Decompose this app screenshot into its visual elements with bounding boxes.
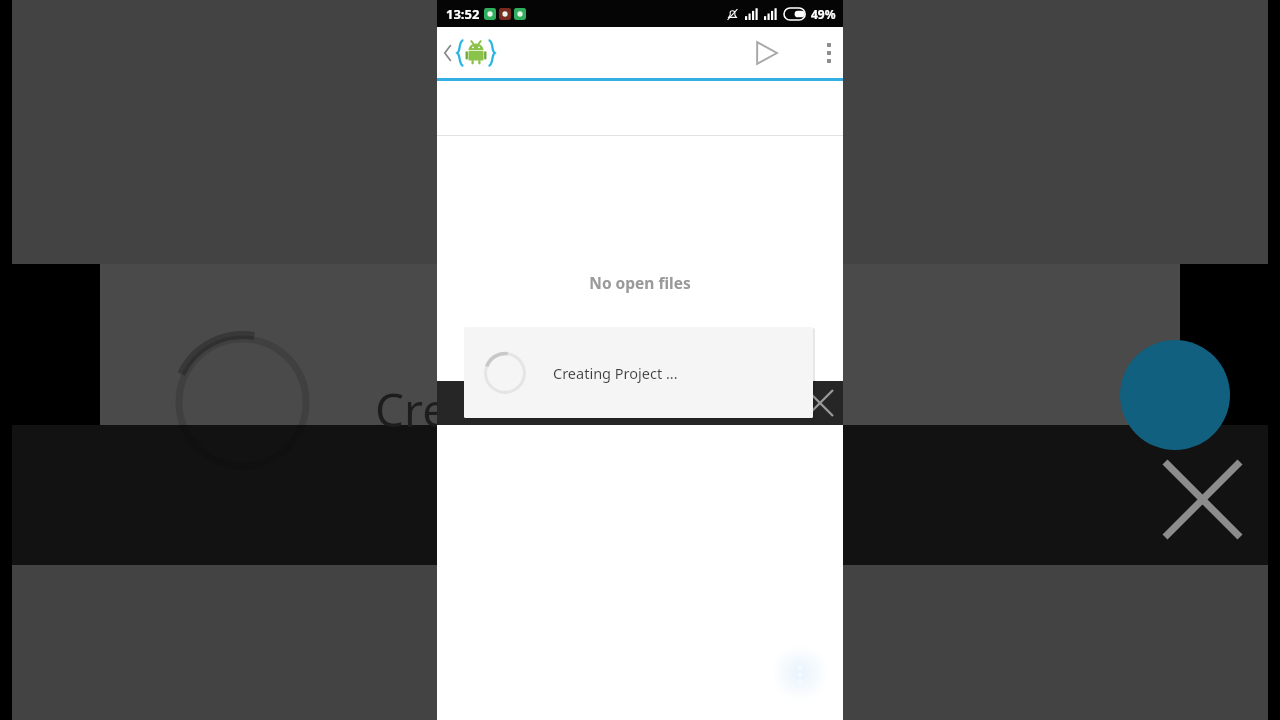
staticText: 49% bbox=[811, 6, 836, 22]
staticText: Creating Project ... bbox=[553, 363, 678, 383]
staticText: No open files bbox=[437, 272, 843, 293]
staticText: Cre bbox=[375, 378, 449, 441]
button[interactable]: More options bbox=[815, 35, 843, 71]
staticText: No open files bbox=[437, 420, 843, 441]
button[interactable]: Add bbox=[771, 644, 829, 702]
button[interactable]: Creating Project ... bbox=[464, 327, 813, 418]
staticText: 13:52 bbox=[446, 5, 480, 23]
button[interactable]: Back to projects bbox=[437, 33, 504, 73]
button[interactable]: Run bbox=[745, 32, 787, 74]
